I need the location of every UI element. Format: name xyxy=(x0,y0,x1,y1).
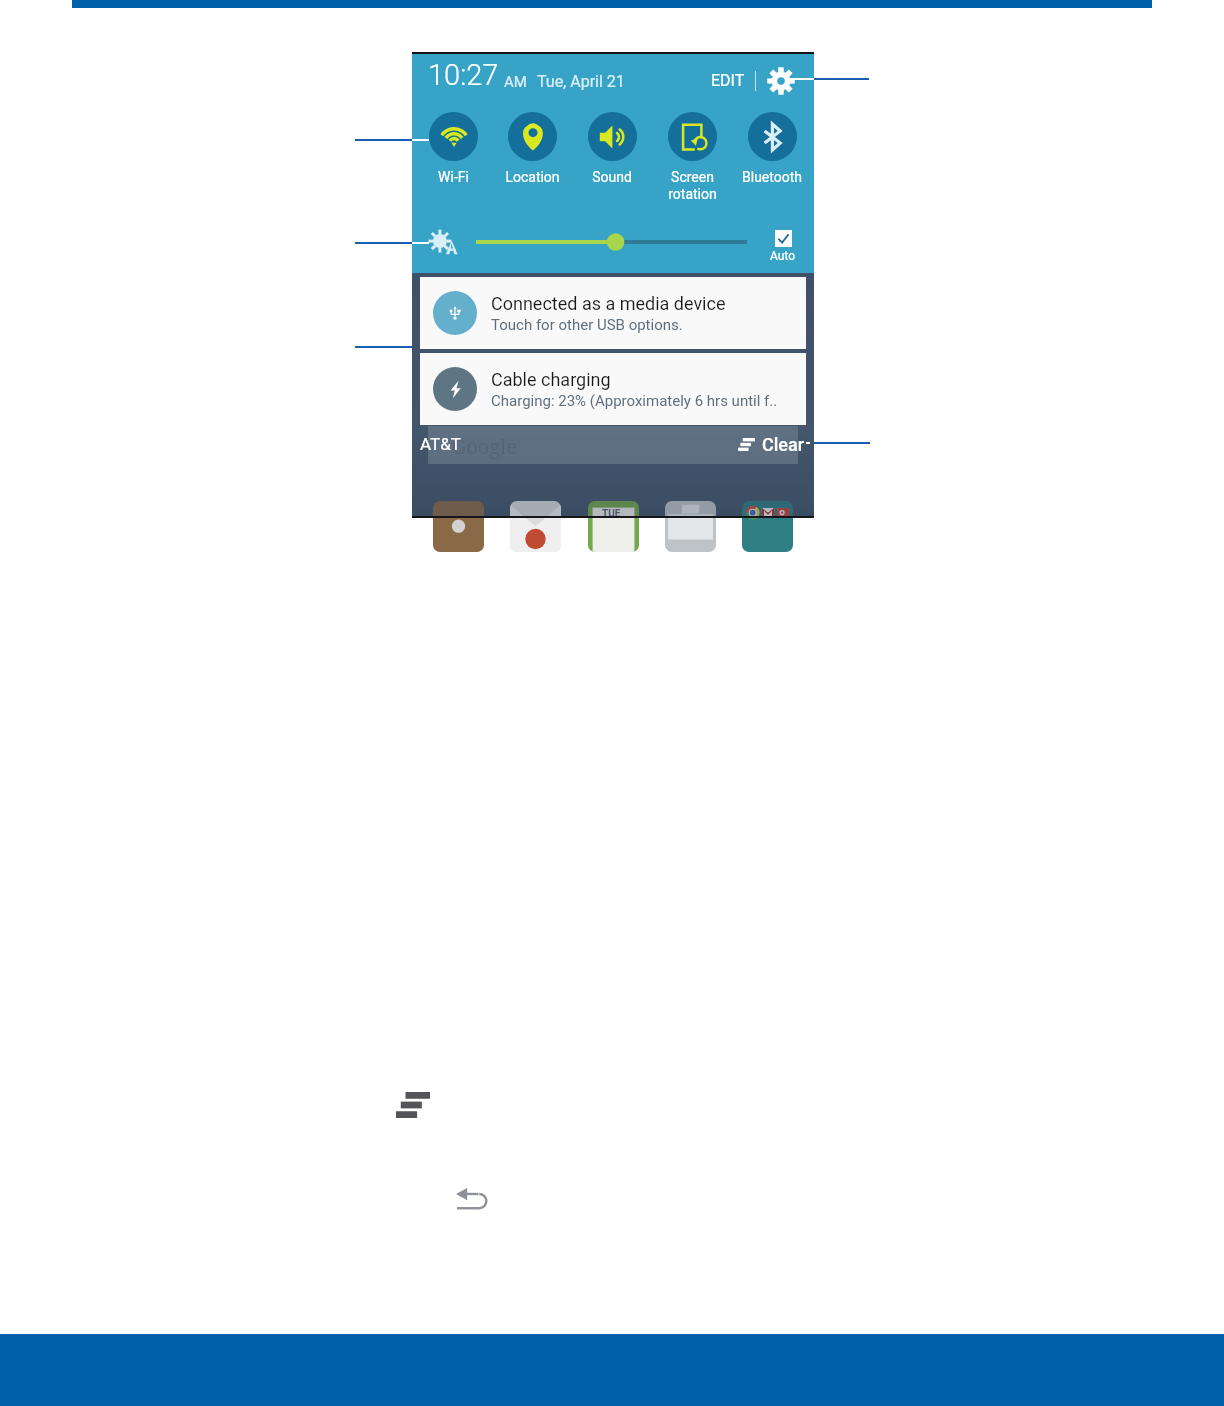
staticText: Auto xyxy=(770,249,796,263)
staticText: EDIT xyxy=(711,71,745,90)
staticText: 10:27 xyxy=(428,58,499,92)
staticText: Clear xyxy=(762,434,805,455)
staticText: Wi-Fi xyxy=(438,169,469,185)
staticText: Connected as a media device xyxy=(491,293,726,314)
staticText: Bluetooth xyxy=(742,169,802,185)
staticText: Google xyxy=(452,433,518,460)
staticText: Sound xyxy=(592,169,632,185)
button[interactable]: Screen rotation xyxy=(652,112,732,203)
button[interactable]: EDIT xyxy=(711,71,745,90)
button[interactable]: Auto brightness xyxy=(770,230,796,263)
staticText: Cable charging xyxy=(491,369,611,390)
button[interactable]: Cable charging xyxy=(420,353,806,425)
staticText: Tue, April 21 xyxy=(537,72,625,91)
staticText: Location xyxy=(505,169,560,185)
button[interactable]: Wi-Fi xyxy=(414,112,493,185)
button[interactable]: Settings xyxy=(767,67,795,95)
button[interactable]: Clear xyxy=(738,434,805,455)
button[interactable]: Bluetooth xyxy=(732,112,812,185)
staticText: AT&T xyxy=(420,434,461,454)
button[interactable]: Brightness xyxy=(476,232,747,252)
staticText: AM xyxy=(504,73,527,91)
staticText: Touch for other USB options. xyxy=(491,316,683,334)
button[interactable]: Connected as a media device xyxy=(420,277,806,349)
staticText: TUE xyxy=(602,508,621,520)
button[interactable]: Location xyxy=(493,112,572,185)
button[interactable]: Sound xyxy=(572,112,652,185)
staticText: Charging: 23% (Approximately 6 hrs until… xyxy=(491,392,778,410)
staticText: Screen rotation xyxy=(668,169,717,203)
